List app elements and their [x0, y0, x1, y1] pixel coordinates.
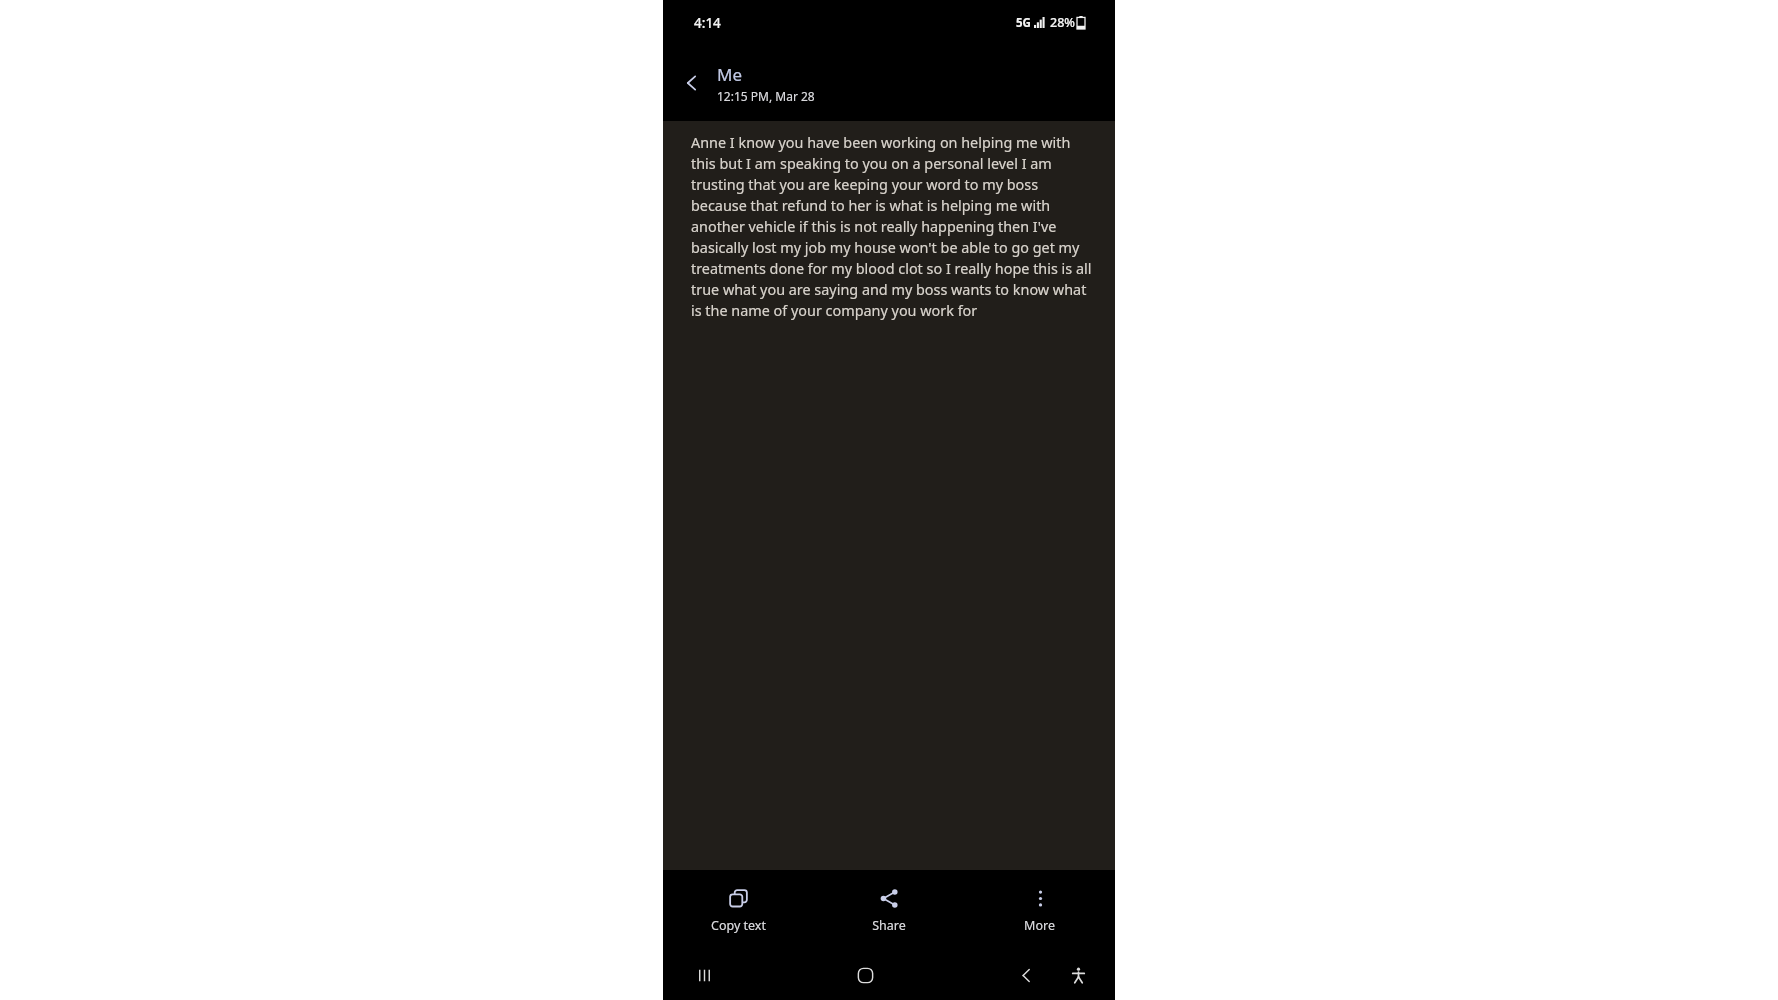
button[interactable]: Copy text [663, 870, 813, 950]
button[interactable]: Home [842, 952, 888, 998]
staticText: Anne I know you have been working on hel… [691, 133, 1095, 321]
staticText: More [1024, 917, 1055, 934]
staticText: 5G [1016, 15, 1031, 31]
staticText: Share [872, 917, 906, 934]
staticText: 28% [1050, 14, 1075, 31]
button[interactable]: Accessibility [1055, 952, 1101, 998]
staticText: 12:15 PM, Mar 28 [717, 88, 815, 104]
button[interactable]: Share [813, 870, 964, 950]
button[interactable]: Back [1003, 952, 1049, 998]
button[interactable]: Back [673, 59, 711, 107]
staticText: 4:14 [694, 14, 721, 32]
button[interactable]: Recents [681, 952, 727, 998]
button[interactable]: More [964, 870, 1115, 950]
staticText: Copy text [711, 917, 766, 934]
staticText: Me [717, 63, 743, 86]
